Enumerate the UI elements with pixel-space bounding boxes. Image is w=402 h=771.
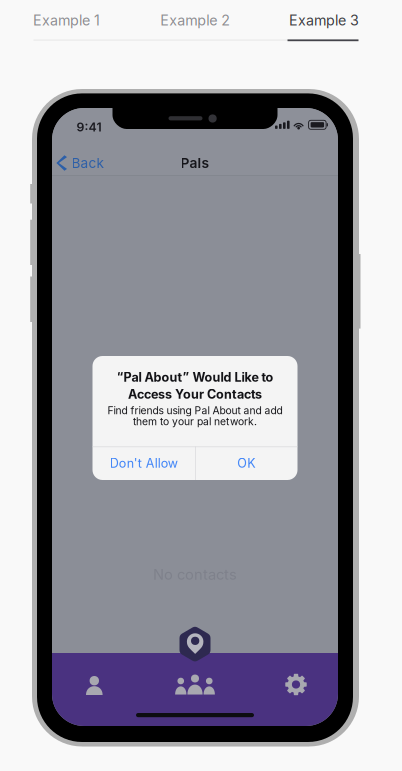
staticText: Access Your Contacts <box>128 386 262 402</box>
button[interactable]: Profile <box>60 663 128 707</box>
button[interactable]: Back <box>52 150 111 176</box>
staticText: Example 2 <box>160 12 230 29</box>
staticText: Don't Allow <box>110 456 178 471</box>
button[interactable]: Example 1 <box>2 0 131 40</box>
staticText: Example 3 <box>289 12 359 29</box>
button[interactable]: Example 3 <box>260 0 388 40</box>
staticText: Find friends using Pal About and add <box>107 404 282 417</box>
staticText: 9:41 <box>76 119 101 134</box>
button[interactable]: Settings <box>262 662 330 706</box>
staticText: Back <box>71 155 103 171</box>
button[interactable]: Pals <box>161 662 229 706</box>
button[interactable]: Example 2 <box>131 0 260 40</box>
staticText: Example 1 <box>33 12 100 29</box>
staticText: Pals <box>180 155 209 171</box>
button[interactable]: Don't Allow <box>92 446 195 480</box>
staticText: No contacts <box>153 565 237 583</box>
staticText: them to your pal network. <box>133 415 257 428</box>
button[interactable]: OK <box>195 446 297 480</box>
staticText: OK <box>237 456 255 471</box>
staticText: “Pal About” Would Like to <box>116 369 273 385</box>
